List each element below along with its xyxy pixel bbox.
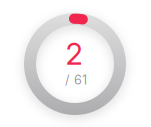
button[interactable]: 2 of 61 complete [0, 0, 151, 127]
staticText: 2 [65, 36, 82, 72]
staticText: / 61 [65, 72, 87, 88]
